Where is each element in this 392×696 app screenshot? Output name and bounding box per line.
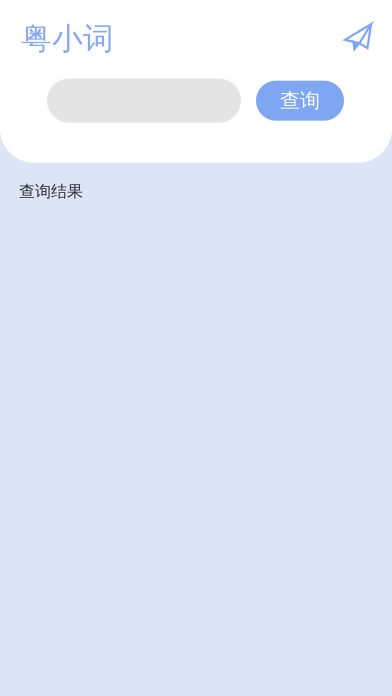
button[interactable]: Send (343, 24, 373, 54)
button[interactable]: 查询 (256, 81, 344, 121)
button[interactable]: Search field (47, 79, 241, 123)
staticText: 查询 (280, 88, 320, 113)
staticText: 粤小词 (21, 20, 114, 58)
staticText: 查询结果 (19, 182, 83, 201)
